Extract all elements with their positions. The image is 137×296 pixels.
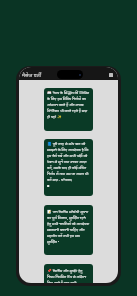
- staticText: 📘 पूरी तरह से सत्य बात को समझने के लिए आ…: [47, 141, 90, 188]
- staticText: 📝 जन स्वास्थ्य सम्बन्धी सूचना का पूर्ण व…: [47, 209, 90, 244]
- staticText: 📌 स्वास्थ्य और सुरक्षा हेतु नियम नियमित …: [47, 268, 90, 283]
- staticText: 📖 न्याय के सिद्धांत की व्याख्या के लिए ह…: [47, 90, 90, 119]
- button[interactable]: 📌 स्वास्थ्य और सुरक्षा हेतु नियम नियमित …: [44, 264, 93, 283]
- button[interactable]: 📖 न्याय के सिद्धांत की व्याख्या के लिए ह…: [44, 88, 93, 131]
- button[interactable]: 📝 जन स्वास्थ्य सम्बन्धी सूचना का पूर्ण व…: [44, 205, 93, 255]
- button[interactable]: 📘 पूरी तरह से सत्य बात को समझने के लिए आ…: [44, 139, 93, 196]
- staticText: मैसेज वर्ती: [22, 71, 41, 78]
